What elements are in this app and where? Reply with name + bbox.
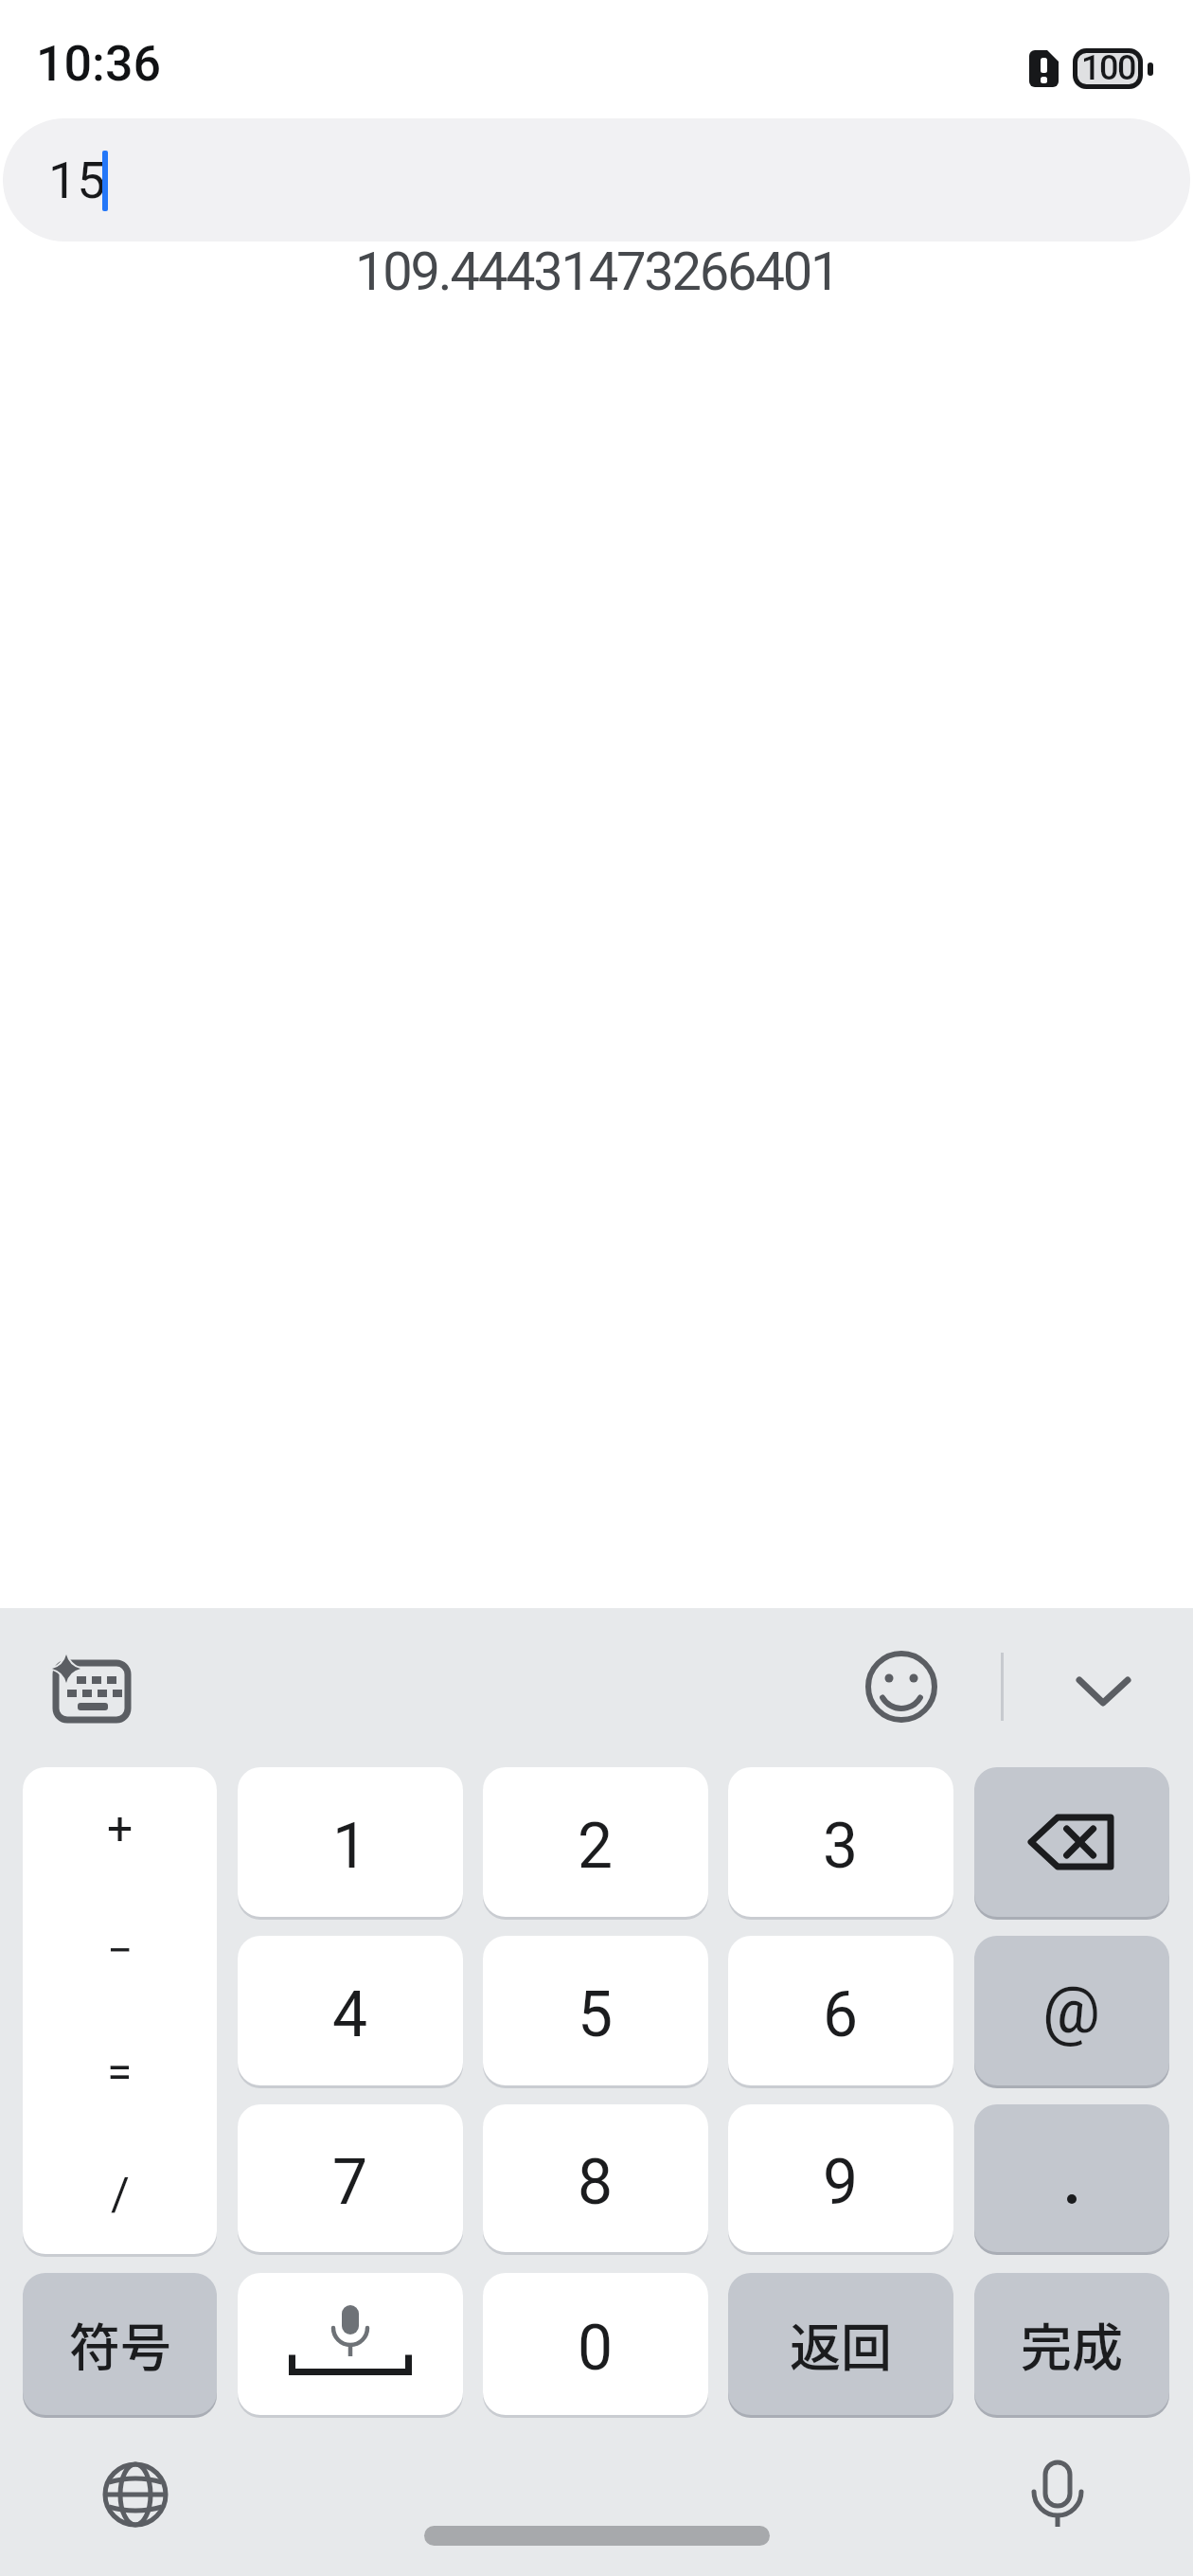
staticText: @: [1042, 1973, 1101, 2048]
button[interactable]: [864, 1649, 939, 1725]
staticText: 8: [578, 2146, 614, 2219]
button[interactable]: [1024, 2459, 1091, 2530]
button[interactable]: 8: [483, 2104, 708, 2252]
button[interactable]: 0: [483, 2273, 708, 2415]
button[interactable]: 5: [483, 1936, 708, 2085]
staticText: 0: [578, 2312, 614, 2385]
button[interactable]: [974, 2104, 1169, 2252]
staticText: 4: [332, 1978, 368, 2051]
button[interactable]: 6: [728, 1936, 953, 2085]
staticText: 返回: [790, 2307, 892, 2381]
staticText: /: [111, 2167, 130, 2220]
button[interactable]: [44, 1646, 138, 1731]
staticText: 3: [823, 1810, 859, 1883]
button[interactable]: 9: [728, 2104, 953, 2252]
staticText: 109.44431473266401: [355, 241, 839, 303]
button[interactable]: 完成: [974, 2273, 1169, 2415]
button[interactable]: @: [974, 1936, 1169, 2085]
staticText: 9: [823, 2146, 859, 2219]
staticText: 15: [48, 151, 106, 210]
button[interactable]: 3: [728, 1767, 953, 1917]
staticText: 7: [332, 2146, 368, 2219]
staticText: 100: [1081, 48, 1135, 88]
button[interactable]: 4: [238, 1936, 463, 2085]
button[interactable]: [102, 2461, 169, 2528]
staticText: −: [107, 1923, 134, 1977]
button[interactable]: 7: [238, 2104, 463, 2252]
staticText: 1: [332, 1810, 368, 1883]
button[interactable]: [974, 1767, 1169, 1917]
staticText: 6: [823, 1978, 859, 2051]
staticText: 10:36: [36, 35, 162, 93]
button[interactable]: 1: [238, 1767, 463, 1917]
button[interactable]: 2: [483, 1767, 708, 1917]
staticText: 完成: [1021, 2307, 1123, 2381]
button[interactable]: 返回: [728, 2273, 953, 2415]
button[interactable]: [238, 2273, 463, 2415]
staticText: +: [107, 1801, 134, 1854]
button[interactable]: [23, 1767, 217, 2254]
staticText: 2: [578, 1810, 614, 1883]
button[interactable]: 15: [3, 118, 1190, 241]
staticText: 5: [578, 1978, 614, 2051]
staticText: =: [107, 2045, 133, 2098]
button[interactable]: 符号: [23, 2273, 217, 2415]
button[interactable]: [1068, 1663, 1139, 1720]
staticText: 符号: [69, 2307, 171, 2381]
